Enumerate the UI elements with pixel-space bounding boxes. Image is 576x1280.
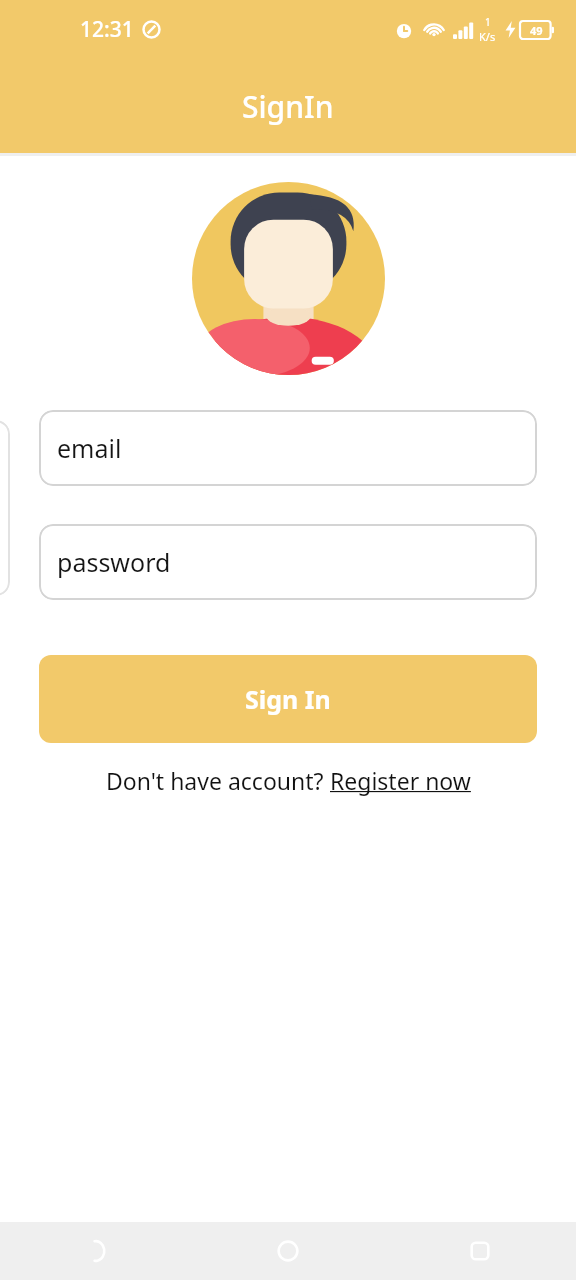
staticText: email	[57, 431, 122, 465]
staticText: 49	[530, 23, 543, 38]
button[interactable]: email	[39, 410, 537, 486]
button[interactable]	[0, 420, 10, 596]
button[interactable]: Don't have account?	[106, 765, 471, 796]
staticText: 12:31	[80, 15, 134, 44]
staticText: Don't have account?	[106, 765, 330, 796]
staticText: Register now	[330, 765, 471, 796]
staticText: SignIn	[242, 86, 334, 127]
staticText: K/s	[479, 29, 496, 44]
staticText: password	[57, 545, 171, 579]
staticText: 1	[485, 15, 491, 29]
button[interactable]: password	[39, 524, 537, 600]
button[interactable]: Sign In	[39, 655, 537, 743]
staticText: Sign In	[245, 682, 331, 716]
